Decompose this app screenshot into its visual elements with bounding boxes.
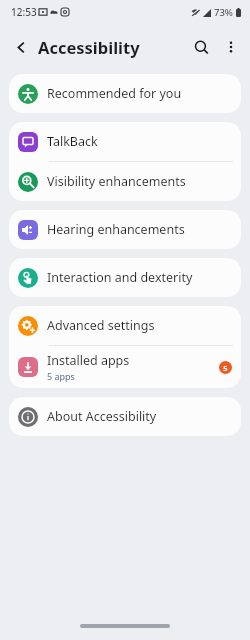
- staticText: Installed apps: [47, 352, 130, 369]
- staticText: Advanced settings: [47, 317, 155, 334]
- button[interactable]: About Accessibility: [9, 397, 241, 436]
- button[interactable]: Visibility enhancements: [9, 162, 241, 201]
- staticText: 5: [223, 363, 228, 373]
- staticText: Visibility enhancements: [47, 173, 186, 190]
- button[interactable]: Search: [186, 32, 216, 62]
- staticText: 73%: [214, 6, 233, 19]
- staticText: Accessibility: [38, 36, 140, 58]
- staticText: Interaction and dexterity: [47, 269, 193, 286]
- button[interactable]: Interaction and dexterity: [9, 258, 241, 297]
- staticText: Recommended for you: [47, 85, 182, 102]
- button[interactable]: Back: [6, 32, 36, 62]
- staticText: TalkBack: [47, 133, 98, 150]
- button[interactable]: Installed apps: [9, 346, 241, 388]
- button[interactable]: More options: [216, 32, 246, 62]
- staticText: 12:53: [11, 5, 37, 19]
- button[interactable]: Hearing enhancements: [9, 210, 241, 249]
- button[interactable]: Recommended for you: [9, 74, 241, 113]
- staticText: 5 apps: [47, 370, 75, 382]
- staticText: About Accessibility: [47, 408, 157, 425]
- staticText: Hearing enhancements: [47, 221, 185, 238]
- button[interactable]: Advanced settings: [9, 306, 241, 345]
- button[interactable]: TalkBack: [9, 122, 241, 161]
